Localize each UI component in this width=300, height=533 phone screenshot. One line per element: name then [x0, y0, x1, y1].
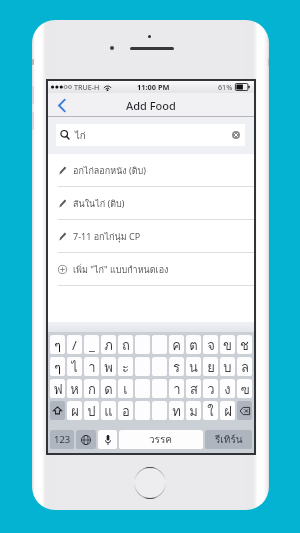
- button[interactable]: ใ: [203, 401, 218, 420]
- staticText: บ: [223, 357, 232, 376]
- staticText: 11:00 PM: [137, 82, 170, 92]
- staticText: 7-11 อกไก่นุ่ม CP: [73, 230, 141, 244]
- staticText: TRUE-H: [74, 82, 100, 92]
- staticText: อกไก่ลอกหนัง (ดิบ): [73, 164, 146, 178]
- button[interactable]: สันในไก่ (ดิบ): [48, 187, 254, 220]
- staticText: ฝ: [224, 401, 232, 420]
- button[interactable]: ด: [101, 379, 116, 398]
- button[interactable]: ่: [152, 379, 167, 398]
- button[interactable]: ล: [237, 357, 252, 376]
- button[interactable]: Change keyboard: [76, 430, 96, 449]
- button[interactable]: บ: [220, 357, 235, 376]
- button[interactable]: ส: [186, 379, 201, 398]
- button[interactable]: เ: [118, 379, 133, 398]
- button[interactable]: ป: [84, 401, 99, 420]
- staticText: ห: [70, 379, 79, 398]
- button[interactable]: ภ: [101, 335, 116, 354]
- button[interactable]: /: [67, 335, 82, 354]
- staticText: 123: [54, 433, 71, 446]
- staticText: สันในไก่ (ดิบ): [73, 197, 125, 211]
- staticText: ล: [241, 357, 249, 376]
- button[interactable]: วรรค: [119, 430, 203, 449]
- staticText: ๆ: [54, 335, 61, 354]
- button[interactable]: 123: [50, 430, 74, 449]
- button[interactable]: Home: [135, 468, 165, 498]
- button[interactable]: ห: [67, 379, 82, 398]
- button[interactable]: ๆ: [50, 335, 65, 354]
- staticText: จ: [207, 335, 215, 354]
- staticText: ผ: [71, 401, 79, 420]
- button[interactable]: ก: [84, 379, 99, 398]
- button[interactable]: จ: [203, 335, 218, 354]
- button[interactable]: ิ: [135, 401, 150, 420]
- button[interactable]: น: [186, 357, 201, 376]
- staticText: ำ: [88, 357, 96, 376]
- button[interactable]: ต: [186, 335, 201, 354]
- button[interactable]: [50, 401, 65, 420]
- button[interactable]: า: [169, 379, 184, 398]
- button[interactable]: 7-11 อกไก่นุ่ม CP: [48, 220, 254, 253]
- button[interactable]: ุ: [135, 335, 150, 354]
- button[interactable]: เพิ่ม "ไก่" แบบกำหนดเอง: [48, 253, 254, 286]
- button[interactable]: Clear text: [229, 128, 243, 142]
- button[interactable]: ถ: [118, 335, 133, 354]
- staticText: ๆ: [54, 357, 61, 376]
- button[interactable]: ง: [220, 379, 235, 398]
- button[interactable]: ไ: [67, 357, 82, 376]
- button[interactable]: ค: [169, 335, 184, 354]
- staticText: ฟ: [53, 379, 63, 398]
- staticText: ฃ: [240, 379, 250, 398]
- staticText: ใ: [207, 401, 214, 420]
- button[interactable]: _: [84, 335, 99, 354]
- button[interactable]: ข: [220, 335, 235, 354]
- button[interactable]: ื: [152, 401, 167, 420]
- button[interactable]: ๆ: [50, 357, 65, 376]
- button[interactable]: ว: [203, 379, 218, 398]
- button[interactable]: ี: [152, 357, 167, 376]
- button[interactable]: ม: [186, 401, 201, 420]
- button[interactable]: ร: [169, 357, 184, 376]
- button[interactable]: ั: [135, 357, 150, 376]
- staticText: ส: [190, 379, 198, 398]
- staticText: อ: [122, 401, 130, 420]
- staticText: 61%: [218, 82, 233, 92]
- button[interactable]: ำ: [84, 357, 99, 376]
- staticText: ค: [172, 335, 181, 354]
- button[interactable]: ึ: [152, 335, 167, 354]
- button[interactable]: ฝ: [220, 401, 235, 420]
- button[interactable]: ท: [169, 401, 184, 420]
- staticText: ข: [223, 335, 232, 354]
- staticText: เพิ่ม "ไก่" แบบกำหนดเอง: [73, 263, 169, 277]
- button[interactable]: ย: [203, 357, 218, 376]
- button[interactable]: ผ: [67, 401, 82, 420]
- staticText: ถ: [122, 335, 130, 354]
- button[interactable]: ไก่: [56, 124, 245, 146]
- staticText: น: [189, 357, 198, 376]
- button[interactable]: อ: [118, 401, 133, 420]
- button[interactable]: อกไก่ลอกหนัง (ดิบ): [48, 154, 254, 187]
- button[interactable]: รีเทิร์น: [205, 430, 252, 449]
- staticText: ก: [88, 379, 96, 398]
- button[interactable]: Back: [48, 93, 76, 117]
- button[interactable]: Dictate: [98, 430, 117, 449]
- button[interactable]: [237, 401, 252, 420]
- staticText: ร: [173, 357, 180, 376]
- button[interactable]: ฃ: [237, 379, 252, 398]
- staticText: /: [72, 336, 77, 354]
- staticText: วรรค: [149, 432, 173, 448]
- staticText: ต: [189, 335, 198, 354]
- staticText: ว: [207, 379, 215, 398]
- button[interactable]: พ: [101, 357, 116, 376]
- staticText: พ: [104, 357, 113, 376]
- button[interactable]: ้: [135, 379, 150, 398]
- staticText: ช: [240, 335, 249, 354]
- staticText: ง: [224, 379, 231, 398]
- staticText: Add Food: [126, 98, 176, 113]
- button[interactable]: ช: [237, 335, 252, 354]
- button[interactable]: ะ: [118, 357, 133, 376]
- button[interactable]: แ: [101, 401, 116, 420]
- button[interactable]: ฟ: [50, 379, 65, 398]
- staticText: แ: [104, 401, 113, 420]
- staticText: เ: [123, 379, 128, 398]
- staticText: ย: [207, 357, 215, 376]
